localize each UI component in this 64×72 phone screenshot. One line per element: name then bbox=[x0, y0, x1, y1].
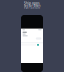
staticText: faster than bbox=[23, 3, 40, 8]
staticText: ever before bbox=[23, 6, 40, 10]
staticText: Ship apps bbox=[24, 1, 40, 5]
